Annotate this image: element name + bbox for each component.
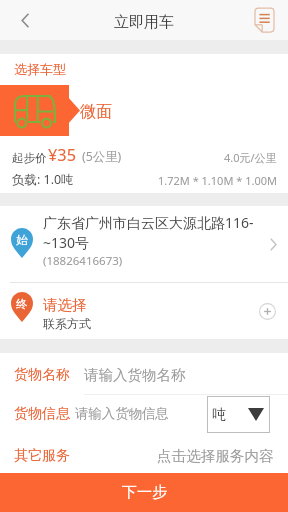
staticText: 联系方式	[43, 316, 91, 331]
staticText: 起步价	[12, 151, 47, 165]
staticText: 选择车型	[14, 61, 66, 77]
staticText: 其它服务	[14, 447, 70, 465]
staticText: ¥35	[48, 144, 76, 166]
staticText: 货物信息	[14, 405, 70, 423]
button[interactable]: 始	[0, 206, 288, 282]
button[interactable]: Order list	[242, 0, 288, 40]
staticText: 货物名称	[14, 366, 70, 384]
staticText: 终	[16, 297, 28, 311]
staticText: (5公里)	[82, 148, 122, 165]
staticText: 4.0元/公里	[224, 150, 277, 165]
button[interactable]: 吨	[207, 396, 270, 433]
staticText: 负载: 1.0吨	[12, 171, 74, 188]
staticText: 点击选择服务内容	[157, 447, 274, 465]
button[interactable]: Add contact	[254, 298, 280, 324]
button[interactable]: 终	[0, 283, 288, 339]
button[interactable]: 下一步	[0, 473, 288, 512]
staticText: (18826416673)	[43, 253, 123, 269]
button[interactable]: Back	[0, 0, 44, 40]
staticText: 吨	[212, 406, 226, 424]
staticText: 下一步	[122, 483, 167, 502]
button[interactable]: 其它服务	[0, 438, 288, 473]
staticText: 广东省广州市白云区大源北路116-	[43, 213, 254, 232]
staticText: 微面	[80, 102, 112, 122]
staticText: 请选择	[43, 296, 87, 314]
staticText: 立即用车	[114, 13, 174, 32]
staticText: 始	[16, 233, 28, 247]
staticText: 1.72M * 1.10M * 1.00M	[158, 173, 277, 188]
staticText: ~130号	[43, 233, 90, 252]
staticText: 请输入货物信息	[75, 405, 169, 422]
staticText: 请输入货物名称	[84, 366, 186, 384]
